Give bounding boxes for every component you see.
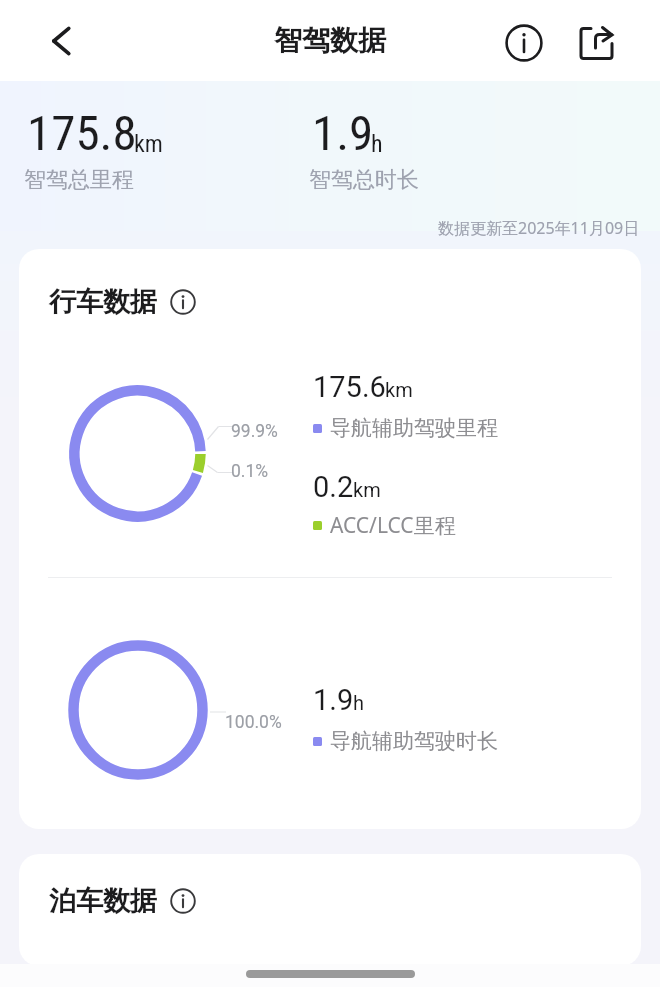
staticText: 导航辅助驾驶时长 <box>330 728 498 754</box>
staticText: h <box>353 691 365 714</box>
staticText: km <box>353 478 381 501</box>
staticText: 智驾数据 <box>274 23 386 58</box>
staticText: 175.8 <box>27 105 137 162</box>
staticText: 智驾总里程 <box>24 166 134 194</box>
button[interactable]: Info <box>170 888 196 914</box>
button[interactable]: Back <box>36 19 80 63</box>
staticText: 智驾总时长 <box>309 166 419 194</box>
button[interactable]: Info <box>170 289 196 315</box>
staticText: 0.2 <box>313 470 354 504</box>
staticText: 泊车数据 <box>49 884 157 918</box>
staticText: 1.9 <box>313 683 354 717</box>
staticText: 99.9% <box>231 421 278 442</box>
staticText: h <box>371 130 383 158</box>
staticText: 100.0% <box>225 712 282 733</box>
staticText: 1.9 <box>312 105 374 162</box>
staticText: km <box>385 378 413 401</box>
staticText: 数据更新至2025年11月09日 <box>438 217 640 239</box>
staticText: ACC/LCC里程 <box>330 511 456 540</box>
button[interactable]: Share <box>572 16 622 66</box>
staticText: 0.1% <box>231 461 269 482</box>
staticText: 行车数据 <box>49 285 157 319</box>
staticText: 175.6 <box>313 370 386 404</box>
staticText: km <box>134 130 163 158</box>
button[interactable]: Info <box>500 16 550 66</box>
staticText: 导航辅助驾驶里程 <box>330 415 498 441</box>
